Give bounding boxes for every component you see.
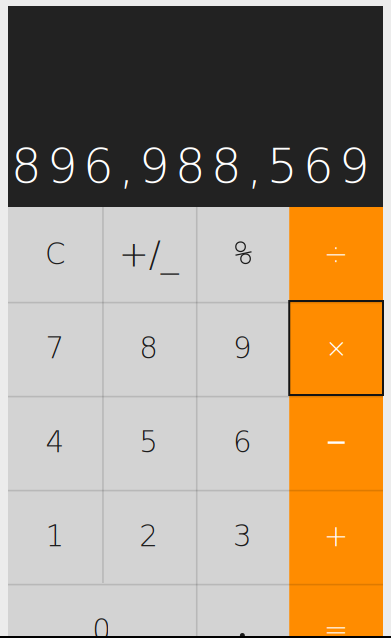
- button[interactable]: C: [8, 207, 102, 301]
- button[interactable]: 9: [195, 301, 289, 395]
- button[interactable]: 3: [195, 489, 289, 583]
- button[interactable]: 6: [195, 395, 289, 489]
- staticText: 6: [233, 425, 252, 459]
- staticText: +/_: [119, 233, 179, 275]
- button[interactable]: [195, 583, 289, 638]
- staticText: 896,988,569: [11, 138, 370, 194]
- button[interactable]: ÷: [289, 207, 383, 301]
- button[interactable]: +: [289, 489, 383, 583]
- button[interactable]: [289, 395, 383, 489]
- button[interactable]: 0: [8, 583, 195, 638]
- button[interactable]: 1: [8, 489, 102, 583]
- staticText: 8: [139, 331, 158, 365]
- button[interactable]: 4: [8, 395, 102, 489]
- button[interactable]: ×: [289, 301, 383, 395]
- staticText: 5: [139, 425, 158, 459]
- staticText: 7: [45, 331, 64, 365]
- button[interactable]: 7: [8, 301, 102, 395]
- button[interactable]: 5: [102, 395, 196, 489]
- staticText: 0: [92, 613, 111, 638]
- button[interactable]: =: [289, 583, 383, 638]
- button[interactable]: 8: [102, 301, 196, 395]
- staticText: =: [324, 613, 349, 638]
- staticText: 4: [45, 425, 64, 459]
- staticText: ×: [325, 332, 347, 363]
- staticText: ÷: [324, 237, 349, 271]
- staticText: 9: [233, 331, 252, 365]
- staticText: 3: [233, 519, 252, 553]
- staticText: C: [45, 237, 65, 271]
- button[interactable]: [195, 207, 289, 301]
- button[interactable]: 2: [102, 489, 196, 583]
- button[interactable]: +/_: [102, 207, 196, 301]
- staticText: 1: [45, 519, 64, 553]
- staticText: 2: [139, 519, 158, 553]
- staticText: +: [324, 519, 349, 553]
